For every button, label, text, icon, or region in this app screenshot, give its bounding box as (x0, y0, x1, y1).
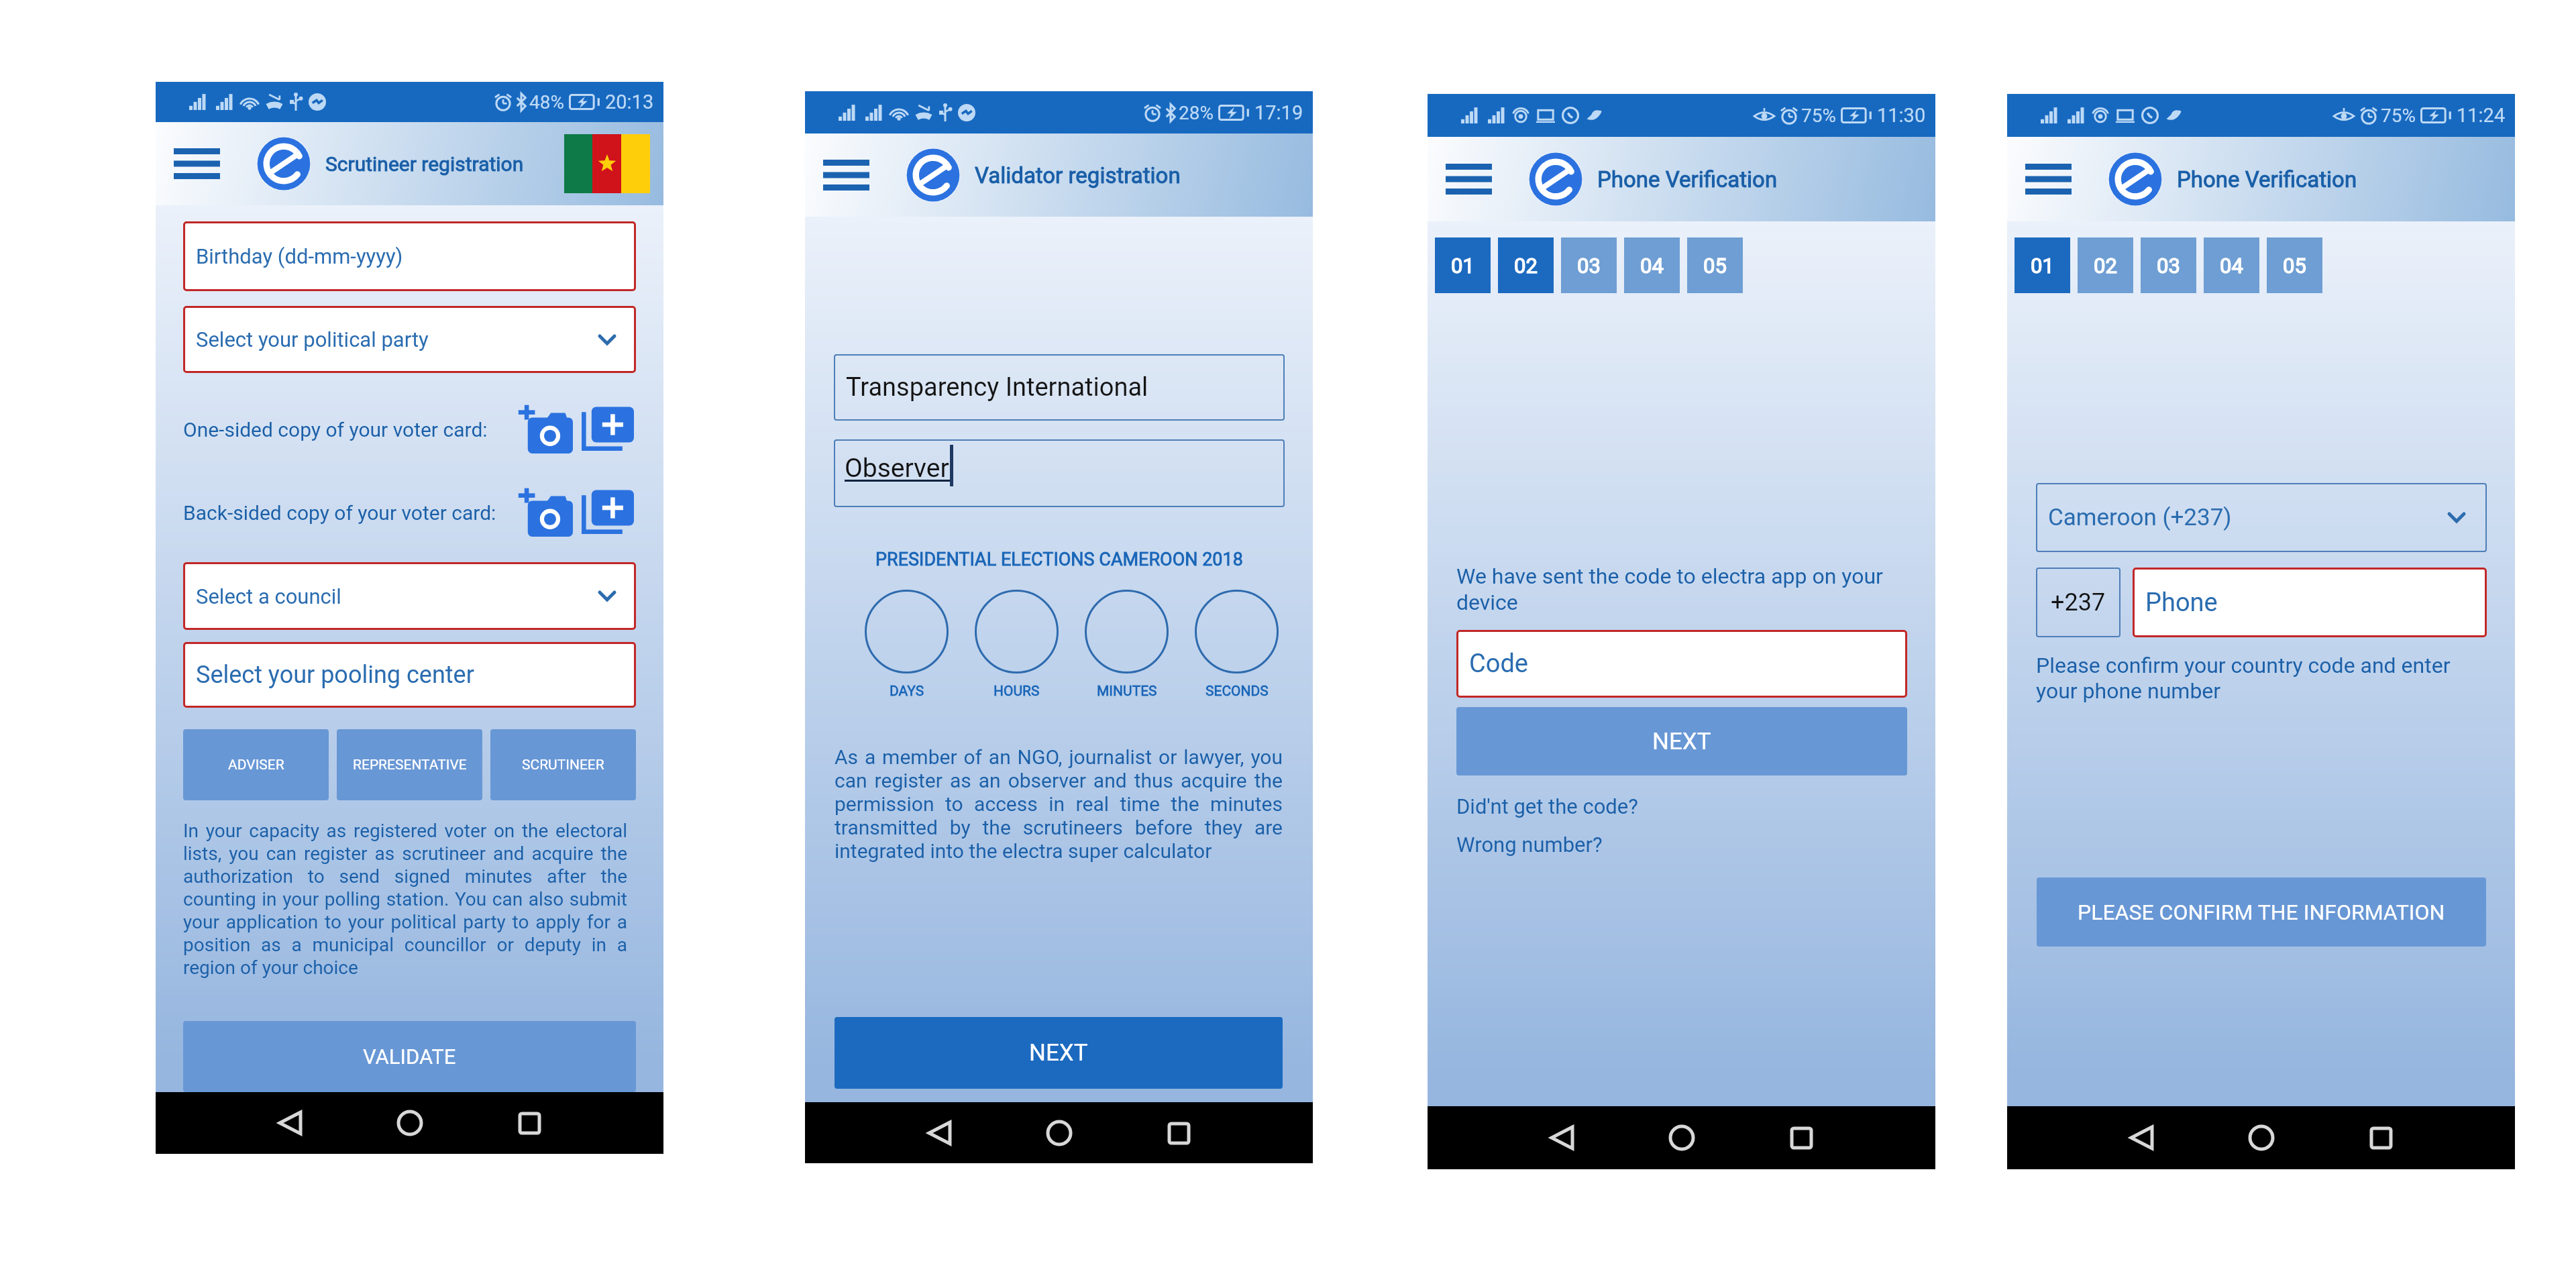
staticText: 20:13 (605, 91, 654, 113)
button[interactable]: REPRESENTATIVE (337, 729, 482, 800)
button[interactable]: Phone (2133, 568, 2487, 637)
button[interactable]: 02 (1498, 237, 1554, 293)
staticText: ADVISER (228, 757, 284, 773)
button[interactable]: Cameroon (+237) (2036, 483, 2487, 552)
button[interactable]: Back (911, 1105, 967, 1161)
button[interactable]: NEXT (835, 1017, 1283, 1089)
button[interactable]: Recents (1150, 1105, 1207, 1161)
staticText: Select a council (196, 584, 341, 608)
staticText: SCRUTINEER (522, 757, 604, 773)
staticText: Transparency International (846, 372, 1148, 402)
staticText: Phone (2145, 588, 2218, 618)
button[interactable]: NEXT (1456, 707, 1907, 775)
staticText: Observer (845, 453, 949, 484)
staticText: As a member of an NGO, journalist or law… (835, 745, 1283, 863)
staticText: Back-sided copy of your voter card: (183, 501, 496, 525)
button[interactable]: Recents (1773, 1110, 1829, 1166)
staticText: 75% (1801, 105, 1836, 127)
staticText: REPRESENTATIVE (353, 757, 467, 773)
staticText: NEXT (1029, 1039, 1088, 1067)
button[interactable]: Take photo (515, 486, 576, 539)
button[interactable]: Take photo (515, 402, 576, 456)
button[interactable]: Menu (170, 143, 223, 184)
staticText: DAYS (890, 683, 924, 700)
staticText: NEXT (1652, 728, 1711, 755)
button[interactable]: Back (2113, 1110, 2169, 1166)
button[interactable]: Observer (834, 439, 1285, 507)
staticText: SECONDS (1205, 683, 1269, 700)
button[interactable]: 05 (2267, 237, 2322, 293)
staticText: We have sent the code to electra app on … (1456, 563, 1899, 615)
staticText: 03 (2157, 254, 2180, 278)
staticText: Phone Verification (2177, 166, 2357, 193)
staticText: Select your political party (196, 327, 429, 352)
button[interactable]: Select your pooling center (183, 642, 636, 708)
button[interactable]: Recents (2353, 1110, 2409, 1166)
staticText: 01 (1451, 254, 1474, 278)
staticText: 03 (1577, 254, 1601, 278)
staticText: +237 (2051, 588, 2106, 616)
button[interactable]: Select a council (183, 562, 636, 630)
staticText: 11:30 (1877, 104, 1926, 127)
staticText: MINUTES (1097, 683, 1157, 700)
staticText: Cameroon (+237) (2048, 504, 2232, 531)
staticText: Select your pooling center (196, 661, 474, 689)
button[interactable]: PLEASE CONFIRM THE INFORMATION (2037, 877, 2486, 947)
button[interactable]: ADVISER (183, 729, 329, 800)
staticText: 04 (1640, 254, 1664, 278)
button[interactable]: Transparency International (834, 354, 1285, 421)
button[interactable]: Menu (1442, 158, 1495, 200)
button[interactable]: Wrong number? (1456, 833, 1603, 857)
button[interactable]: 04 (2204, 237, 2259, 293)
staticText: 75% (2381, 105, 2416, 127)
button[interactable]: SCRUTINEER (490, 729, 636, 800)
button[interactable]: 01 (1435, 237, 1491, 293)
staticText: 17:19 (1254, 101, 1303, 124)
button[interactable]: Home (1031, 1105, 1087, 1161)
button[interactable]: Birthday (dd-mm-yyyy) (183, 221, 636, 291)
staticText: PRESIDENTIAL ELECTIONS CAMEROON 2018 (875, 549, 1243, 570)
staticText: Birthday (dd-mm-yyyy) (196, 244, 403, 268)
staticText: 28% (1179, 102, 1214, 124)
button[interactable]: Select your political party (183, 306, 636, 373)
staticText: 05 (2283, 254, 2306, 278)
button[interactable]: 01 (2015, 237, 2070, 293)
button[interactable]: 04 (1624, 237, 1680, 293)
button[interactable]: Home (382, 1095, 438, 1151)
button[interactable]: Did'nt get the code? (1456, 794, 1638, 818)
staticText: 48% (529, 91, 564, 113)
staticText: 02 (2094, 254, 2117, 278)
button[interactable]: Recents (501, 1095, 557, 1151)
staticText: 11:24 (2457, 104, 2506, 127)
staticText: Scrutineer registration (325, 152, 524, 176)
staticText: In your capacity as registered voter on … (183, 820, 627, 979)
staticText: Validator registration (975, 162, 1181, 189)
button[interactable]: Code (1456, 630, 1907, 698)
staticText: One-sided copy of your voter card: (183, 418, 488, 441)
staticText: 04 (2220, 254, 2243, 278)
button[interactable]: 03 (1561, 237, 1617, 293)
button[interactable]: 02 (2078, 237, 2133, 293)
button[interactable]: Back (1534, 1110, 1590, 1166)
staticText: PLEASE CONFIRM THE INFORMATION (2078, 900, 2445, 925)
button[interactable]: Home (1654, 1110, 1710, 1166)
staticText: Phone Verification (1597, 166, 1778, 193)
staticText: VALIDATE (363, 1044, 456, 1069)
button[interactable]: +237 (2036, 568, 2121, 637)
staticText: HOURS (994, 683, 1040, 700)
button[interactable]: Menu (820, 154, 872, 196)
staticText: Please confirm your country code and ent… (2036, 653, 2479, 704)
staticText: 05 (1703, 254, 1727, 278)
button[interactable]: Back (262, 1095, 318, 1151)
button[interactable]: 03 (2141, 237, 2196, 293)
button[interactable]: Menu (2022, 158, 2074, 200)
button[interactable]: Add from gallery (580, 402, 636, 456)
button[interactable]: Add from gallery (580, 486, 636, 539)
staticText: 02 (1514, 254, 1538, 278)
staticText: Code (1469, 649, 1528, 679)
button[interactable]: VALIDATE (183, 1021, 636, 1092)
staticText: 01 (2031, 254, 2054, 278)
button[interactable]: Home (2233, 1110, 2290, 1166)
button[interactable]: 05 (1687, 237, 1743, 293)
